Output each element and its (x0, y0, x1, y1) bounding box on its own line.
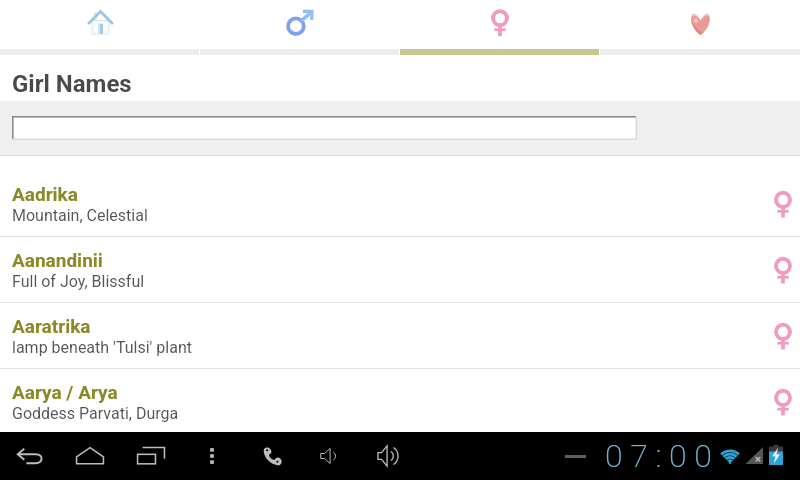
button[interactable]: Boy names (200, 0, 400, 49)
button[interactable]: Favourites (600, 0, 800, 49)
button[interactable]: Home (64, 432, 116, 480)
button[interactable]: Back (5, 432, 55, 480)
button[interactable]: More options (191, 432, 233, 480)
button[interactable]: Aadrika (0, 171, 800, 236)
button[interactable]: Aaratrika (0, 303, 800, 368)
button[interactable]: Home (0, 0, 200, 49)
staticText: Full of Joy, Blissful (12, 272, 145, 291)
other: Wi-Fi (718, 445, 742, 465)
other: Girl name (771, 184, 795, 224)
other: Mobile signal (745, 446, 764, 465)
button[interactable]: Aarya / Arya (0, 369, 800, 434)
staticText: Girl Names (12, 70, 132, 98)
other: Girl name (771, 382, 795, 422)
staticText: Aarya / Arya (12, 381, 118, 403)
staticText: Mountain, Celestial (12, 206, 148, 225)
staticText: 07:00 (605, 437, 720, 475)
button[interactable]: Volume down (308, 432, 350, 480)
button[interactable]: Volume up (365, 432, 413, 480)
button[interactable]: Girl names (400, 0, 600, 49)
other: Girl name (771, 250, 795, 290)
other: Battery charging (769, 445, 783, 465)
button[interactable]: Search names (12, 116, 637, 140)
button[interactable]: Call (251, 432, 294, 480)
other: Girl name (771, 316, 795, 356)
staticText: lamp beneath 'Tulsi' plant (12, 338, 192, 357)
staticText: Aadrika (12, 183, 78, 205)
button[interactable]: Recents (125, 432, 177, 480)
button[interactable]: Aanandinii (0, 237, 800, 302)
staticText: Aaratrika (12, 315, 91, 337)
staticText: Goddess Parvati, Durga (12, 404, 179, 423)
staticText: Aanandinii (12, 249, 103, 271)
